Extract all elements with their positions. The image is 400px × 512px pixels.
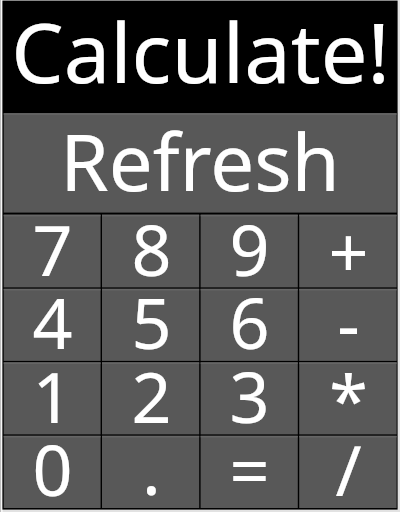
- staticText: 1: [32, 348, 73, 443]
- button[interactable]: 2: [102, 362, 200, 435]
- button[interactable]: Refresh: [3, 113, 397, 213]
- button[interactable]: 8: [102, 214, 200, 288]
- staticText: 8: [131, 201, 172, 296]
- staticText: /: [335, 421, 362, 512]
- staticText: Calculate!: [11, 0, 390, 107]
- button[interactable]: 9: [200, 214, 298, 288]
- staticText: Refresh: [60, 108, 340, 214]
- button[interactable]: 0: [3, 435, 101, 508]
- staticText: 2: [131, 348, 172, 443]
- staticText: 6: [229, 274, 270, 369]
- staticText: 3: [229, 348, 270, 443]
- button[interactable]: 1: [3, 362, 101, 435]
- button[interactable]: 3: [200, 362, 298, 435]
- button[interactable]: 6: [200, 288, 298, 361]
- button[interactable]: +: [299, 214, 397, 288]
- staticText: *: [329, 351, 368, 446]
- button[interactable]: -: [299, 288, 397, 361]
- button[interactable]: .: [102, 435, 200, 508]
- staticText: .: [142, 420, 161, 512]
- button[interactable]: *: [299, 362, 397, 435]
- staticText: 5: [131, 274, 172, 369]
- staticText: =: [229, 421, 270, 512]
- staticText: 7: [32, 201, 73, 296]
- staticText: 0: [32, 421, 73, 512]
- button[interactable]: =: [200, 435, 298, 508]
- button[interactable]: 4: [3, 288, 101, 361]
- button[interactable]: /: [299, 435, 397, 508]
- staticText: 4: [32, 274, 73, 369]
- button[interactable]: 7: [3, 214, 101, 288]
- staticText: -: [337, 275, 360, 370]
- button[interactable]: 5: [102, 288, 200, 361]
- staticText: +: [328, 203, 369, 298]
- staticText: 9: [229, 201, 270, 296]
